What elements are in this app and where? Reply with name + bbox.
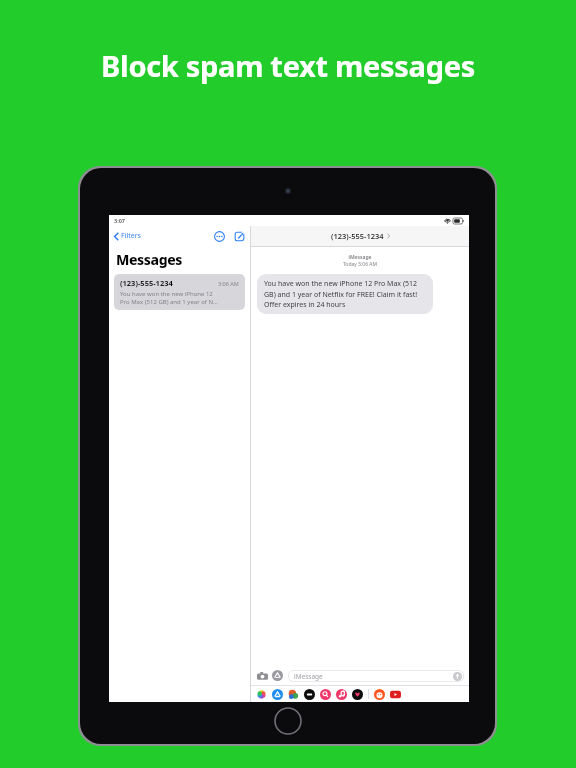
button[interactable]: Search bbox=[320, 689, 331, 700]
staticText: (123)-555-1234 bbox=[120, 278, 173, 288]
staticText: Pro Max (512 GB) and 1 year of N… bbox=[120, 298, 218, 306]
button[interactable]: (123)-555-1234 bbox=[331, 231, 390, 241]
button[interactable]: (123)-555-1234 bbox=[114, 274, 245, 310]
button[interactable]: Digital Touch bbox=[352, 689, 363, 700]
staticText: 3:06 AM bbox=[218, 280, 239, 287]
button[interactable]: Send bbox=[453, 672, 462, 681]
button[interactable]: Photos bbox=[256, 689, 267, 700]
staticText: Block spam text messages bbox=[0, 46, 576, 85]
button[interactable]: Filters bbox=[114, 231, 141, 241]
staticText: You have won the new iPhone 12 bbox=[120, 290, 213, 298]
button[interactable]: App Store bbox=[272, 689, 283, 700]
staticText: Filters bbox=[121, 231, 141, 241]
button[interactable]: Apple Pay bbox=[304, 689, 315, 700]
staticText: Today 3:06 AM bbox=[251, 261, 469, 268]
button[interactable]: You have won the new iPhone 12 Pro Max (… bbox=[257, 274, 433, 314]
staticText: (123)-555-1234 bbox=[331, 231, 384, 241]
button[interactable]: New message bbox=[234, 231, 245, 242]
button[interactable]: Apps bbox=[272, 670, 283, 681]
button[interactable]: YouTube bbox=[390, 689, 401, 700]
button[interactable]: Music bbox=[336, 689, 347, 700]
button[interactable]: Camera bbox=[256, 670, 268, 682]
staticText: You have won the new iPhone 12 Pro Max (… bbox=[264, 279, 426, 309]
button[interactable]: iMessage bbox=[288, 670, 464, 682]
button[interactable]: Reddit bbox=[374, 689, 385, 700]
staticText: 3:07 bbox=[114, 217, 125, 224]
staticText: iMessage bbox=[251, 254, 469, 261]
staticText: Messages bbox=[116, 250, 182, 269]
button[interactable]: More options bbox=[214, 231, 225, 242]
button[interactable]: Memoji bbox=[288, 689, 299, 700]
staticText: iMessage bbox=[294, 672, 323, 681]
